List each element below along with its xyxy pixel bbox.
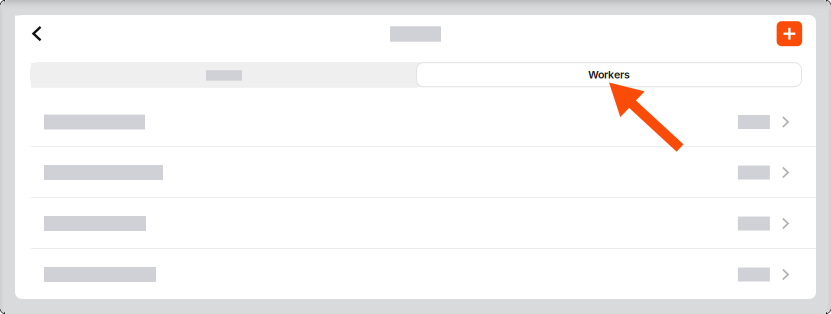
button[interactable] [31, 63, 417, 88]
button[interactable]: Back [15, 16, 59, 52]
staticText: Workers [588, 68, 630, 81]
button[interactable] [15, 147, 816, 198]
button[interactable] [15, 96, 816, 147]
button[interactable]: Workers [416, 62, 801, 87]
button[interactable]: Add [777, 21, 802, 46]
button[interactable] [15, 198, 816, 249]
button[interactable] [15, 249, 816, 300]
